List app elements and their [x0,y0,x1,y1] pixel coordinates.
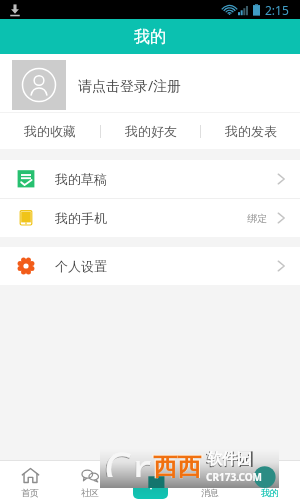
staticText: 绑定 [247,212,267,225]
button[interactable]: 社区 [60,461,120,498]
staticText: 2:15 [265,2,289,18]
staticText: 软件园 [207,450,252,469]
staticText: CR173.COM [206,470,263,484]
button[interactable]: 消息 [180,461,240,498]
staticText: 我的好友 [125,123,177,139]
button[interactable]: 请点击登录/注册 [0,54,300,112]
staticText: 个人设置 [55,258,107,274]
button[interactable]: 我的 [240,461,300,498]
staticText: 我的收藏 [24,123,76,139]
button[interactable]: 我的 [0,19,300,54]
staticText: 我的手机 [55,210,107,226]
staticText: Cr [103,438,152,477]
button[interactable]: Publish [133,468,168,499]
button[interactable]: 我的发表 [201,113,300,149]
staticText: Cr [104,438,152,477]
staticText: 请点击登录/注册 [78,76,182,95]
staticText: 软件园 [206,450,254,470]
staticText: 西西 [152,451,202,482]
button[interactable]: 个人设置 [0,247,300,285]
button[interactable]: 我的草稿 [0,160,300,198]
staticText: 社区 [81,487,99,498]
staticText: 我的 [134,27,166,47]
staticText: 消息 [201,487,219,498]
button[interactable]: 首页 [0,461,60,498]
staticText: 首页 [21,487,39,498]
button[interactable]: 我的好友 [101,113,200,149]
staticText: 我的 [261,487,279,498]
staticText: 我的草稿 [55,171,107,187]
button[interactable]: 我的收藏 [0,113,100,149]
button[interactable]: 我的手机 [0,199,300,237]
staticText: 西西 [153,452,201,482]
staticText: 我的发表 [225,123,277,139]
